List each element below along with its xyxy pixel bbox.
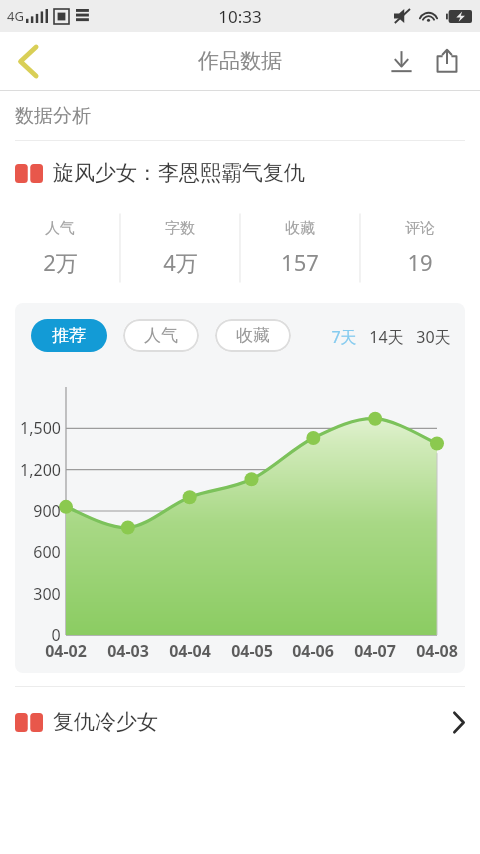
staticText: 人气	[144, 325, 178, 346]
button[interactable]: Share	[424, 38, 470, 84]
button[interactable]: 人气	[0, 205, 120, 291]
staticText: 收藏	[285, 219, 315, 238]
staticText: 04-03	[107, 640, 149, 662]
staticText: 0	[51, 624, 61, 646]
staticText: 复仇冷少女	[53, 709, 158, 735]
staticText: 04-06	[292, 640, 334, 662]
button[interactable]: 字数	[120, 205, 240, 291]
staticText: 4G	[7, 7, 24, 25]
staticText: 字数	[165, 219, 195, 238]
staticText: 04-08	[416, 640, 458, 662]
staticText: 600	[33, 541, 61, 563]
button[interactable]: 7天	[331, 326, 357, 348]
staticText: 2万	[43, 247, 78, 277]
staticText: 数据分析	[15, 104, 91, 128]
button[interactable]: 评论	[360, 205, 480, 291]
button[interactable]: 14天	[369, 326, 404, 348]
staticText: 157	[281, 247, 319, 277]
staticText: 推荐	[52, 325, 86, 346]
button[interactable]: 人气	[123, 319, 199, 352]
button[interactable]: 推荐	[31, 319, 107, 352]
staticText: 收藏	[236, 325, 270, 346]
staticText: 19	[407, 247, 433, 277]
staticText: 人气	[45, 219, 75, 238]
button[interactable]: 30天	[416, 326, 451, 348]
staticText: 04-02	[45, 640, 87, 662]
staticText: 300	[33, 583, 61, 605]
staticText: 1,500	[20, 417, 61, 439]
button[interactable]: 收藏	[215, 319, 291, 352]
staticText: 1,200	[20, 459, 61, 481]
staticText: 30天	[416, 326, 451, 348]
staticText: 04-04	[169, 640, 211, 662]
staticText: 评论	[405, 219, 435, 238]
staticText: 旋风少女：李恩熙霸气复仇	[53, 160, 305, 186]
staticText: 900	[33, 500, 61, 522]
button[interactable]: Back	[0, 33, 56, 89]
button[interactable]: Download	[378, 38, 424, 84]
button[interactable]: 旋风少女：李恩熙霸气复仇	[0, 141, 480, 205]
staticText: 10:33	[218, 5, 262, 28]
button[interactable]: 收藏	[240, 205, 360, 291]
staticText: 14天	[369, 326, 404, 348]
button[interactable]: 复仇冷少女	[0, 687, 480, 757]
staticText: 作品数据	[198, 48, 282, 74]
staticText: 7天	[331, 326, 357, 348]
staticText: 4万	[163, 247, 198, 277]
staticText: 04-05	[231, 640, 273, 662]
staticText: 04-07	[354, 640, 396, 662]
